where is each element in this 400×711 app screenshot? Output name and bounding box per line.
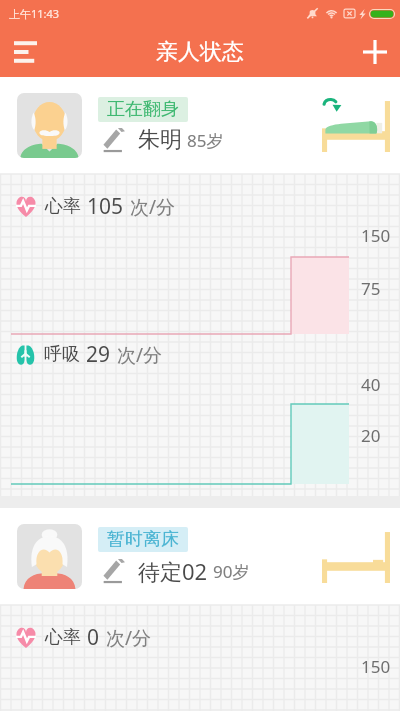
staticText: 150 [361,224,391,247]
staticText: 次/分 [130,194,176,220]
staticText: 150 [361,655,391,678]
staticText: 85岁 [187,129,224,152]
staticText: 次/分 [106,625,152,651]
staticText: 正在翻身 [107,98,179,121]
staticText: 20 [361,424,381,447]
staticText: 0 [87,623,100,652]
staticText: 朱明 [138,126,182,154]
staticText: 暂时离床 [107,528,179,551]
staticText: 29 [86,340,111,369]
staticText: 40 [361,373,381,396]
staticText: 心率 [45,626,81,649]
staticText: 75 [361,277,381,300]
button[interactable]: Menu [0,26,51,77]
staticText: 105 [87,192,124,221]
button[interactable]: 正在翻身 [0,77,400,174]
staticText: 呼吸 [44,343,80,366]
staticText: 亲人状态 [156,38,244,66]
staticText: 待定02 [138,556,208,586]
staticText: 上午11:43 [9,6,60,21]
staticText: 90岁 [213,560,250,583]
button[interactable]: 暂时离床 [0,508,400,605]
staticText: 心率 [45,195,81,218]
staticText: 次/分 [117,342,163,368]
button[interactable]: Add [349,26,400,77]
